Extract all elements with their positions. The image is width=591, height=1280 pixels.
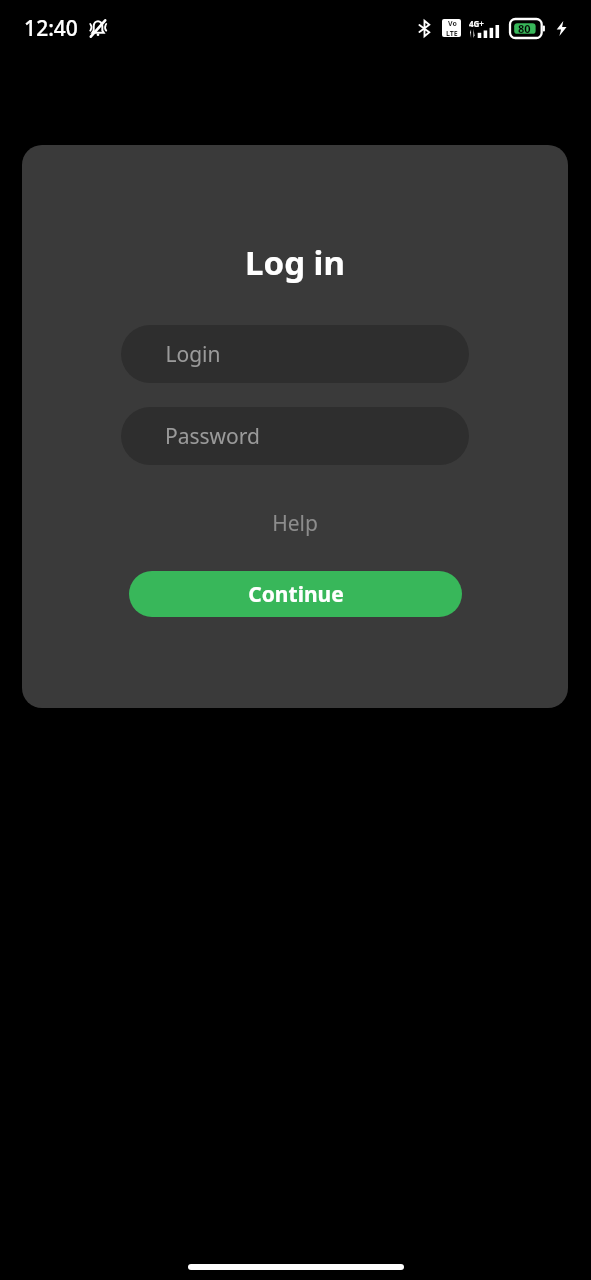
staticText: Help bbox=[272, 509, 318, 538]
staticText: Password bbox=[165, 422, 260, 451]
staticText: 4G+ bbox=[469, 18, 484, 29]
staticText: Log in bbox=[245, 240, 345, 285]
button[interactable]: Login bbox=[121, 325, 469, 383]
button[interactable]: Help bbox=[258, 504, 332, 543]
staticText: LTE bbox=[446, 29, 458, 37]
button[interactable]: Password bbox=[121, 407, 469, 465]
staticText: Vo bbox=[448, 19, 457, 29]
staticText: Login bbox=[165, 340, 221, 369]
staticText: Continue bbox=[248, 580, 344, 609]
staticText: 80 bbox=[518, 21, 531, 36]
other: Silent mode bbox=[86, 17, 110, 41]
staticText: 12:40 bbox=[24, 14, 78, 43]
button[interactable]: Continue bbox=[129, 571, 462, 617]
